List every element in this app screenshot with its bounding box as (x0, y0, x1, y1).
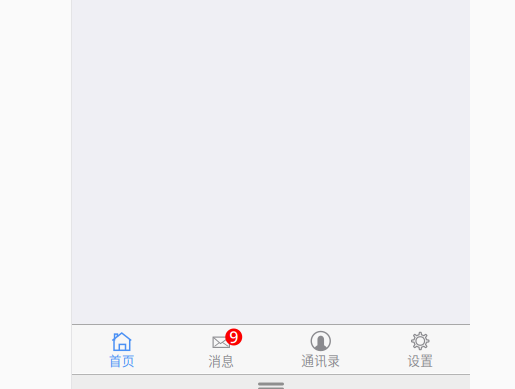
staticText: 设置 (407, 350, 433, 369)
button[interactable]: 消息 (171, 324, 271, 373)
staticText: 消息 (208, 351, 234, 369)
button[interactable]: 通讯录 (271, 324, 370, 373)
staticText: 9 (229, 326, 238, 348)
button[interactable]: 首页 (72, 324, 171, 373)
staticText: 首页 (109, 351, 135, 369)
button[interactable]: 设置 (370, 324, 470, 373)
staticText: 通讯录 (301, 350, 340, 369)
